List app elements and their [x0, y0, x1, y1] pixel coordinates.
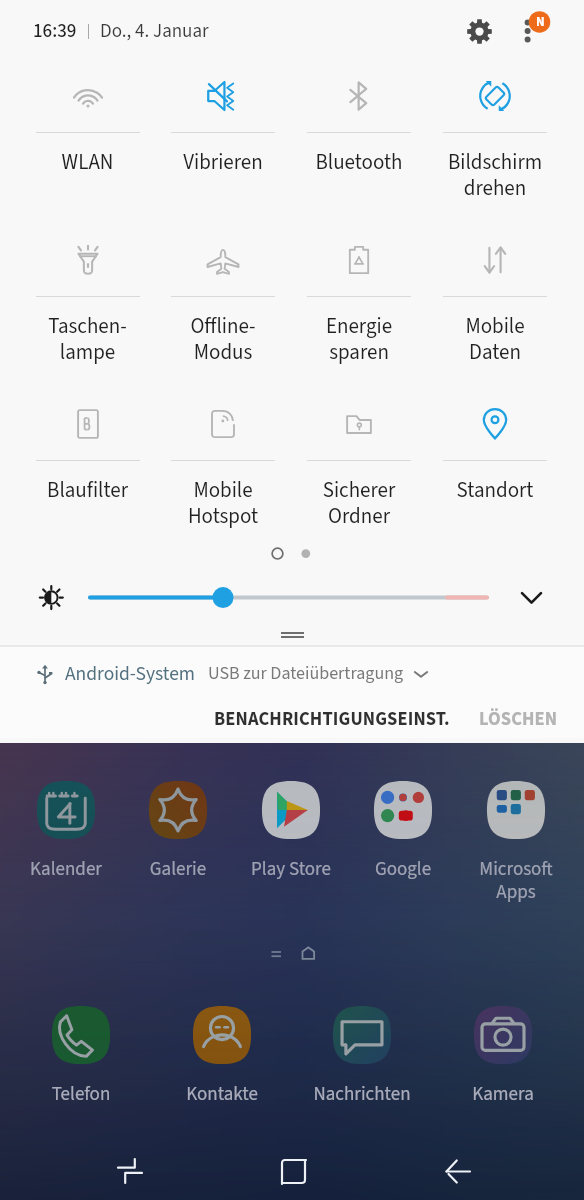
staticText: USB zur Dateiübertragung — [208, 661, 404, 687]
button[interactable]: Sicherer Ordner — [291, 390, 427, 554]
button[interactable]: Kamera — [445, 1000, 561, 1108]
staticText: Kamera — [445, 1081, 561, 1108]
staticText: WLAN — [20, 147, 155, 177]
staticText: Kalender — [8, 856, 124, 883]
button[interactable]: Helligkeitsregler — [88, 578, 489, 618]
button[interactable]: Helligkeit — [29, 576, 73, 620]
button[interactable]: Offline- Modus — [155, 226, 291, 390]
staticText: Do., 4. Januar — [100, 18, 209, 45]
staticText: Nachrichten — [304, 1081, 420, 1108]
staticText: Microsoft Apps — [458, 856, 574, 905]
button[interactable]: Google — [345, 775, 461, 883]
button[interactable]: Kontakte — [164, 1000, 280, 1108]
staticText: Offline- Modus — [155, 311, 291, 367]
staticText: LÖSCHEN — [479, 706, 558, 732]
staticText: Sicherer Ordner — [291, 475, 427, 531]
button[interactable]: Standort — [427, 390, 563, 554]
button[interactable]: BENACHRICHTIGUNGSEINST. — [205, 700, 459, 738]
button[interactable]: Energie sparen — [291, 226, 427, 390]
button[interactable]: Kalender — [8, 775, 124, 883]
staticText: N — [536, 13, 545, 32]
staticText: Play Store — [233, 856, 349, 883]
button[interactable]: Blaufilter — [20, 390, 155, 554]
button[interactable]: Bluetooth — [291, 62, 427, 226]
staticText: Mobile Hotspot — [155, 475, 291, 531]
staticText: Standort — [427, 475, 563, 505]
button[interactable]: Mehr Optionen — [508, 5, 560, 57]
button[interactable]: Mobile Daten — [427, 226, 563, 390]
button[interactable]: Android-System — [0, 647, 584, 700]
staticText: Vibrieren — [155, 147, 291, 177]
staticText: Bildschirm drehen — [427, 147, 563, 203]
staticText: Taschen- lampe — [20, 311, 155, 367]
button[interactable]: LÖSCHEN — [470, 700, 567, 738]
button[interactable]: Galerie — [120, 775, 236, 883]
staticText: Galerie — [120, 856, 236, 883]
button[interactable]: Vibrieren — [155, 62, 291, 226]
button[interactable]: Erweitern — [509, 576, 553, 620]
button[interactable]: Ziehen — [0, 623, 584, 645]
button[interactable]: Startseite — [260, 1142, 326, 1200]
staticText: Android-System — [65, 660, 196, 688]
button[interactable]: Telefon — [23, 1000, 139, 1108]
staticText: Bluetooth — [291, 147, 427, 177]
staticText: Telefon — [23, 1081, 139, 1108]
button[interactable]: Einstellungen — [456, 8, 502, 54]
staticText: Blaufilter — [20, 475, 155, 505]
button[interactable]: Bildschirm drehen — [427, 62, 563, 226]
button[interactable]: Letzte Apps — [97, 1142, 163, 1200]
button[interactable]: Taschen- lampe — [20, 226, 155, 390]
button[interactable]: Microsoft Apps — [458, 775, 574, 905]
button[interactable]: Mobile Hotspot — [155, 390, 291, 554]
staticText: Mobile Daten — [427, 311, 563, 367]
staticText: BENACHRICHTIGUNGSEINST. — [214, 706, 450, 732]
button[interactable]: WLAN — [20, 62, 155, 226]
staticText: 16:39 — [33, 18, 77, 45]
staticText: Kontakte — [164, 1081, 280, 1108]
button[interactable]: Play Store — [233, 775, 349, 883]
staticText: Google — [345, 856, 461, 883]
button[interactable]: Nachrichten — [304, 1000, 420, 1108]
staticText: Energie sparen — [291, 311, 427, 367]
button[interactable]: Zurück — [424, 1142, 490, 1200]
